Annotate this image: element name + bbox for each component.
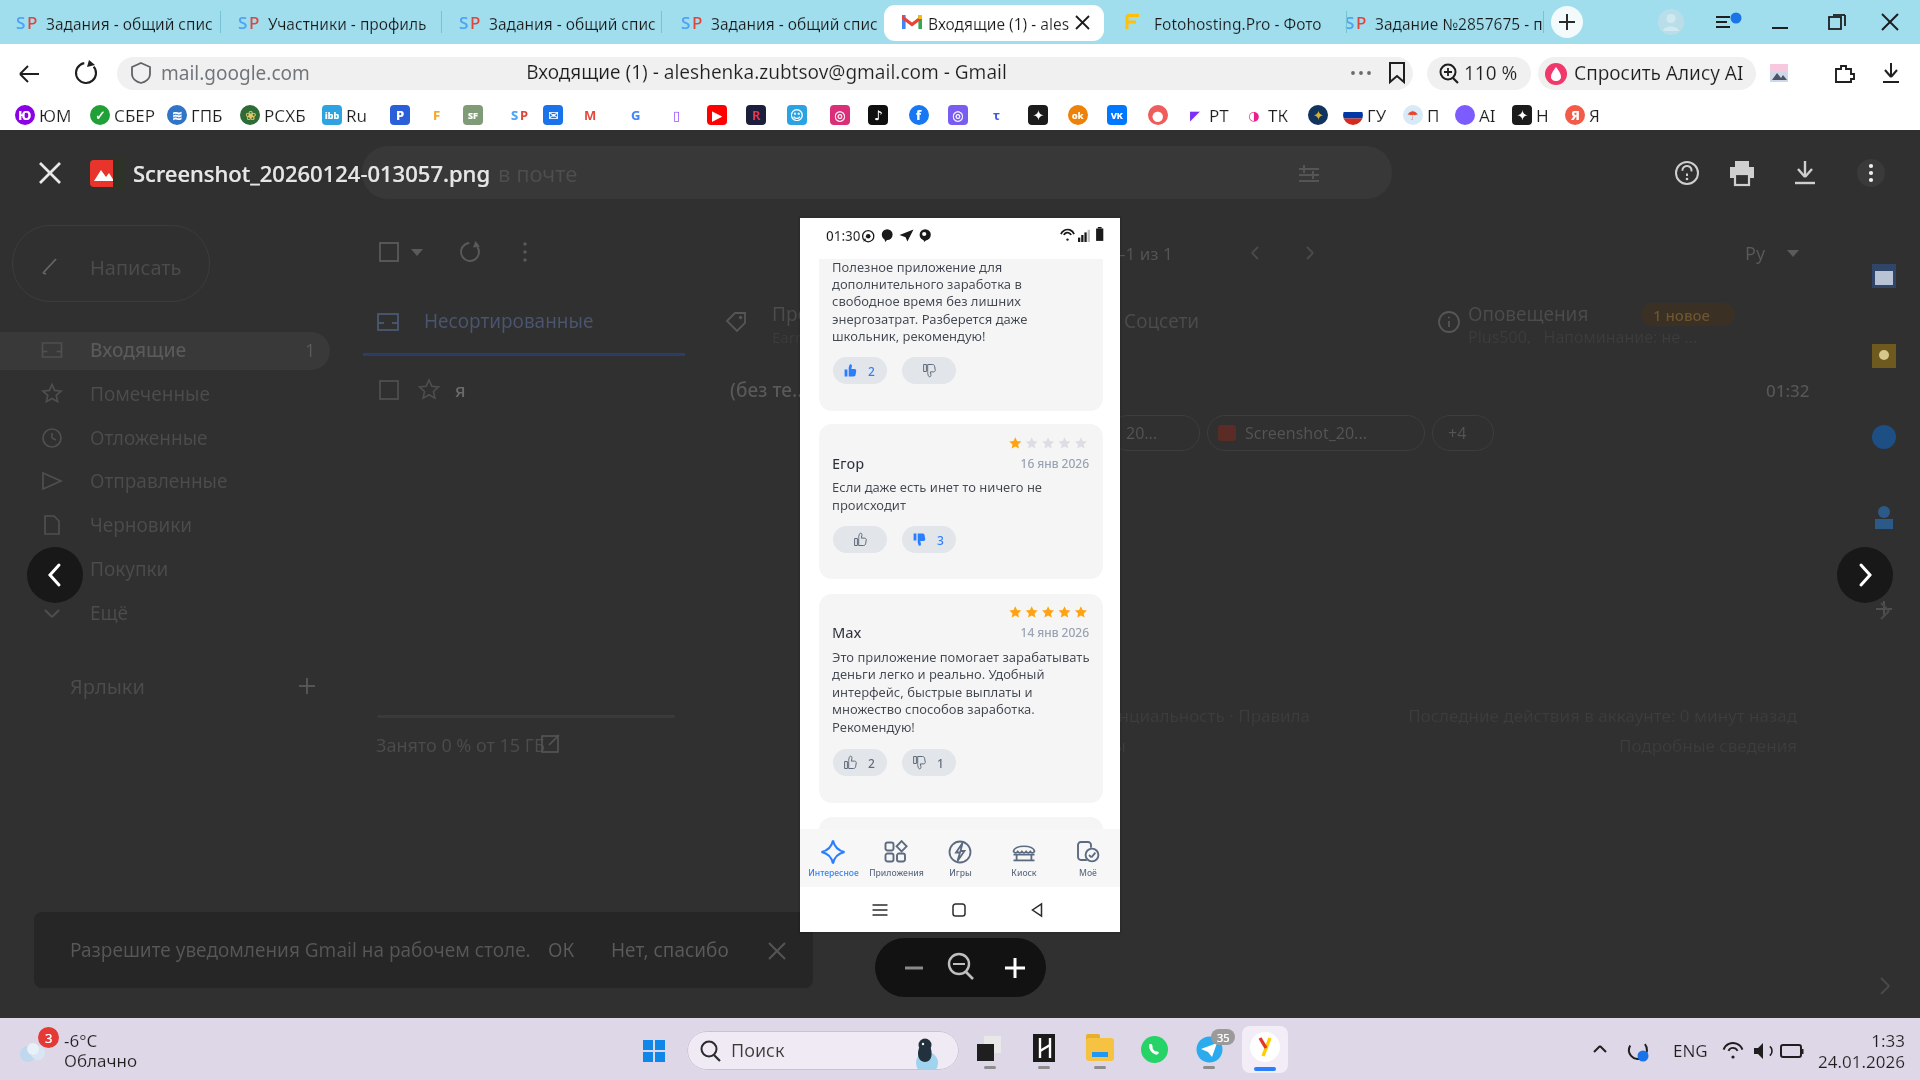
button[interactable]: Bookmark ТК <box>1243 102 1287 128</box>
button[interactable]: Search options <box>1297 162 1321 186</box>
button[interactable] <box>1538 57 1756 90</box>
button[interactable]: Bookmark <box>1307 102 1329 128</box>
button[interactable] <box>0 550 330 588</box>
button[interactable] <box>1329 5 1549 41</box>
button[interactable] <box>833 526 887 553</box>
button[interactable]: Screenshot <box>1768 62 1790 84</box>
button[interactable]: Bookmark <box>389 102 411 128</box>
button[interactable]: Bookmark <box>1147 102 1169 128</box>
button[interactable] <box>0 506 330 544</box>
button[interactable] <box>538 932 586 968</box>
button[interactable]: Download <box>1792 160 1818 186</box>
button[interactable] <box>687 1031 959 1070</box>
button[interactable]: Close <box>36 159 64 187</box>
button[interactable]: Menu <box>1716 12 1742 32</box>
button[interactable]: Bookmark <box>513 102 535 128</box>
button[interactable]: Downloads <box>1880 62 1902 84</box>
button[interactable]: Bookmark <box>1386 61 1408 85</box>
button[interactable]: Bookmark <box>1027 102 1049 128</box>
button[interactable] <box>801 829 865 887</box>
button[interactable] <box>833 357 887 384</box>
button[interactable] <box>992 829 1056 887</box>
button[interactable] <box>902 749 956 776</box>
button[interactable] <box>0 5 220 41</box>
button[interactable]: Next <box>1837 547 1893 603</box>
button[interactable]: Previous <box>27 547 83 603</box>
button[interactable] <box>12 225 210 302</box>
button[interactable]: Bookmark ЮМ <box>14 102 58 128</box>
button[interactable]: Bookmark <box>504 102 526 128</box>
button[interactable] <box>864 829 928 887</box>
button[interactable]: Bookmark Н <box>1511 102 1544 128</box>
button[interactable]: Bookmark П <box>1402 102 1435 128</box>
button[interactable]: Bookmark РТ <box>1184 102 1228 128</box>
button[interactable]: Clock <box>1818 1024 1914 1076</box>
button[interactable]: Bookmark <box>947 102 969 128</box>
button[interactable]: Bookmark <box>986 102 1008 128</box>
button[interactable]: Bookmark СБЕР <box>89 102 155 128</box>
button[interactable]: Bookmark ГУ <box>1342 102 1386 128</box>
button[interactable] <box>928 829 992 887</box>
button[interactable] <box>1427 57 1531 90</box>
button[interactable]: Bookmark <box>829 102 851 128</box>
button[interactable] <box>222 5 442 41</box>
button[interactable] <box>0 462 330 500</box>
button[interactable] <box>665 5 885 41</box>
button[interactable]: Bookmark <box>625 102 647 128</box>
button[interactable]: Start <box>632 1029 676 1071</box>
button[interactable] <box>1056 829 1120 887</box>
button[interactable]: Bookmark <box>1067 102 1089 128</box>
button[interactable]: More options <box>1857 159 1885 187</box>
button[interactable]: Bookmark ГПБ <box>166 102 221 128</box>
button[interactable]: More <box>1350 62 1372 84</box>
button[interactable]: Profile <box>1658 9 1684 35</box>
button[interactable] <box>1242 1026 1288 1073</box>
button[interactable]: Bookmark <box>867 102 889 128</box>
button[interactable]: Show hidden icons <box>1590 1040 1610 1060</box>
button[interactable] <box>443 5 663 41</box>
button[interactable] <box>0 594 330 632</box>
button[interactable] <box>1064 296 1386 348</box>
button[interactable]: Bookmark Я <box>1564 102 1597 128</box>
button[interactable]: Bookmark <box>542 102 564 128</box>
button[interactable]: Bookmark <box>426 102 448 128</box>
button[interactable] <box>363 296 685 348</box>
button[interactable]: WhatsApp <box>1131 1026 1177 1072</box>
button[interactable]: Maximize <box>1827 11 1849 33</box>
button[interactable]: Zoom out <box>879 942 933 993</box>
button[interactable] <box>117 57 1413 90</box>
button[interactable]: Back <box>1029 901 1047 919</box>
button[interactable]: Habr <box>1023 1026 1069 1072</box>
button[interactable] <box>833 749 887 776</box>
button[interactable]: Reset zoom <box>933 942 987 993</box>
button[interactable] <box>0 331 330 369</box>
button[interactable]: Bookmark РСХБ <box>239 102 305 128</box>
button[interactable]: Print <box>1729 160 1755 186</box>
button[interactable]: Bookmark <box>706 102 728 128</box>
button[interactable]: Files <box>1076 1026 1122 1072</box>
button[interactable]: Close tab <box>1074 14 1091 31</box>
button[interactable]: Extensions <box>1832 62 1856 86</box>
button[interactable]: Zoom in <box>988 942 1042 993</box>
button[interactable]: Back <box>17 61 43 87</box>
button[interactable]: Bookmark <box>908 102 930 128</box>
button[interactable]: Bookmark <box>579 102 601 128</box>
button[interactable]: Bookmark <box>745 102 767 128</box>
button[interactable]: Bookmark Ru <box>321 102 365 128</box>
button[interactable]: Telegram <box>1186 1026 1232 1072</box>
button[interactable]: Reload <box>73 60 99 86</box>
button[interactable] <box>0 419 330 457</box>
button[interactable]: Close window <box>1879 11 1901 33</box>
button[interactable]: Help <box>1675 161 1699 185</box>
button[interactable]: Bookmark <box>666 102 688 128</box>
button[interactable] <box>1108 5 1328 41</box>
button[interactable]: Bookmark AI <box>1454 102 1498 128</box>
button[interactable]: Minimize <box>1769 12 1791 34</box>
button[interactable]: Home <box>950 901 968 919</box>
button[interactable]: New tab <box>1551 6 1583 38</box>
button[interactable] <box>601 932 731 968</box>
button[interactable] <box>1408 296 1808 348</box>
button[interactable]: Bookmark <box>786 102 808 128</box>
button[interactable] <box>0 375 330 413</box>
button[interactable]: Bookmark <box>462 102 484 128</box>
